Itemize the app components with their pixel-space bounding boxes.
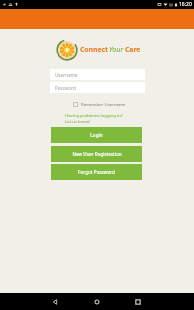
staticText: Username [55,72,78,78]
button[interactable]: New User Registration [51,146,142,162]
staticText: Login [90,132,103,138]
staticText: Your [109,44,124,54]
staticText: Forgot Password [78,169,115,175]
staticText: Care [125,45,141,54]
button[interactable]: Home [88,293,106,310]
button[interactable]: Having problems logging in? Let us know! [65,112,123,124]
staticText: Connect [80,45,108,54]
staticText: 16:20 [179,1,192,8]
staticText: Password [55,85,76,91]
button[interactable]: Recent apps [129,293,147,310]
button[interactable]: Remember Username [73,101,126,107]
staticText: Remember Username [81,101,126,107]
button[interactable]: Password [50,82,145,93]
button[interactable]: Forgot Password [51,164,142,180]
button[interactable]: Login [51,127,142,143]
button[interactable]: Back [46,293,64,310]
button[interactable]: Username [50,69,145,80]
staticText: New User Registration [72,151,122,157]
